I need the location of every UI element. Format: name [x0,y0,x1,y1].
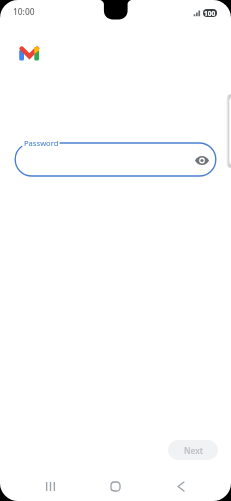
button[interactable]: Home [103,474,127,498]
staticText: Password [24,138,59,148]
button[interactable]: Next [168,440,218,460]
button[interactable]: Show password [192,150,212,170]
button[interactable]: Recent apps [38,474,62,498]
button[interactable]: Back [169,474,193,498]
staticText: Next [184,445,203,456]
staticText: 10:00 [13,6,35,17]
staticText: 100 [204,9,216,17]
